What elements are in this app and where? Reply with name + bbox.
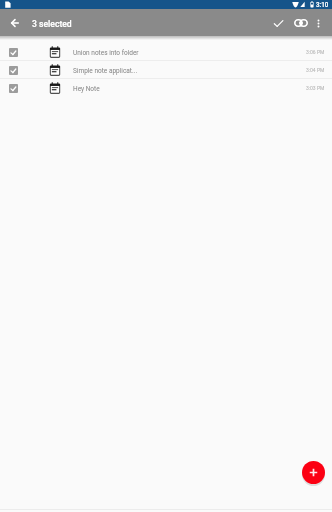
button[interactable]: Hey Note: [0, 79, 332, 97]
staticText: 3:04 PM: [306, 67, 325, 73]
staticText: 3:03 PM: [306, 85, 325, 91]
staticText: 3 selected: [32, 19, 72, 29]
staticText: Union notes into folder: [73, 49, 306, 57]
button[interactable]: Add note: [302, 461, 325, 484]
button[interactable]: Simple note applicat...: [0, 61, 332, 79]
button[interactable]: Back: [3, 11, 27, 35]
button[interactable]: More options: [307, 12, 329, 34]
staticText: 3:10: [316, 1, 329, 8]
staticText: Hey Note: [73, 85, 306, 93]
button[interactable]: Merge notes: [289, 11, 313, 35]
staticText: Simple note applicat...: [73, 67, 306, 75]
button[interactable]: Union notes into folder: [0, 43, 332, 61]
staticText: 3:06 PM: [306, 49, 325, 55]
button[interactable]: Done: [266, 11, 290, 35]
